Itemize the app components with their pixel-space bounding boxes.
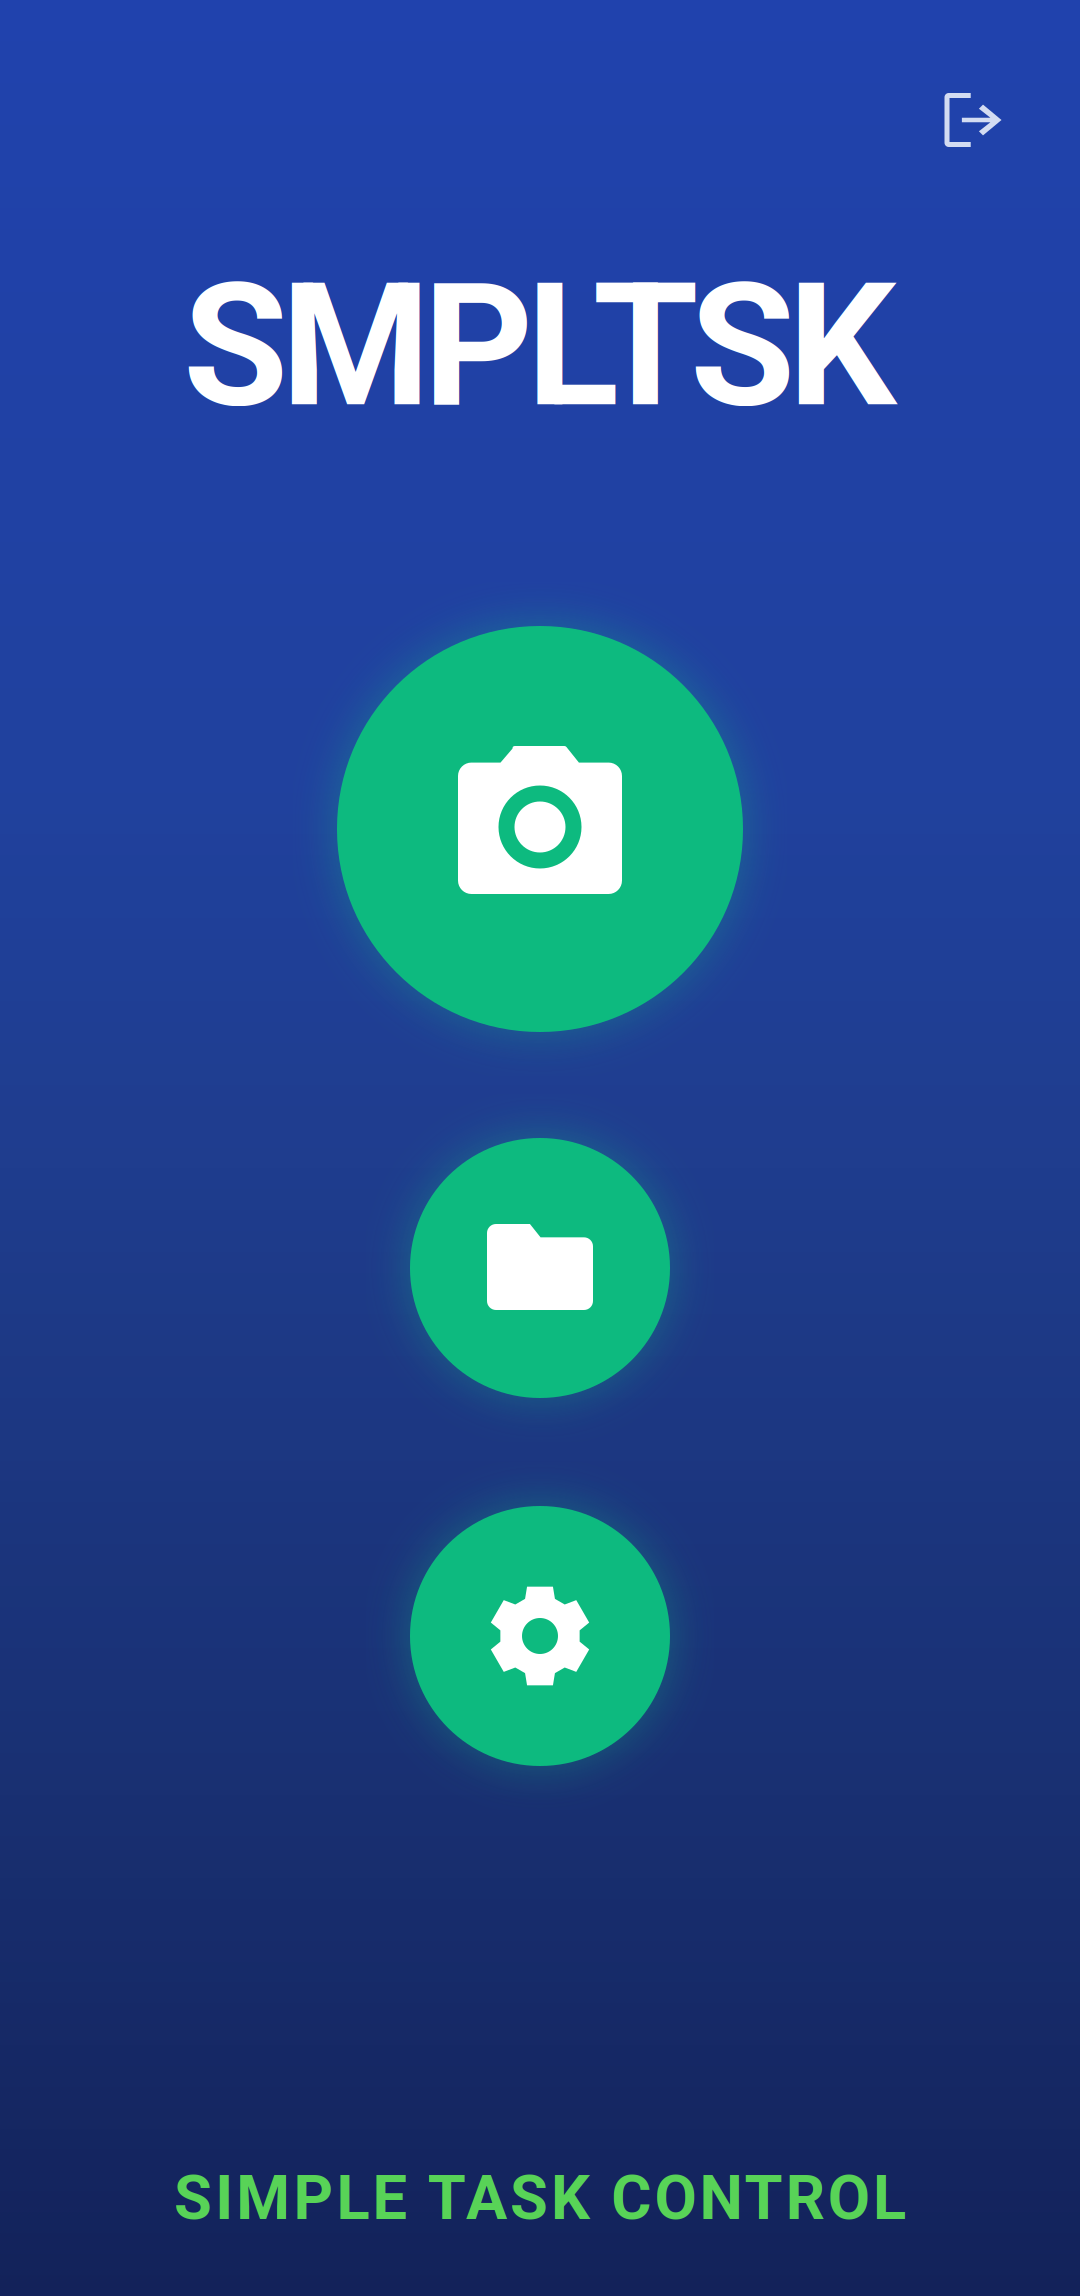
button[interactable]: Settings bbox=[410, 1506, 670, 1766]
button[interactable]: Log out bbox=[910, 59, 1035, 181]
staticText: SIMPLE TASK CONTROL bbox=[174, 2162, 906, 2234]
button[interactable]: Take a photo bbox=[337, 626, 743, 1032]
staticText: SMPLTSK bbox=[183, 246, 897, 446]
button[interactable]: Browse files bbox=[410, 1138, 670, 1398]
